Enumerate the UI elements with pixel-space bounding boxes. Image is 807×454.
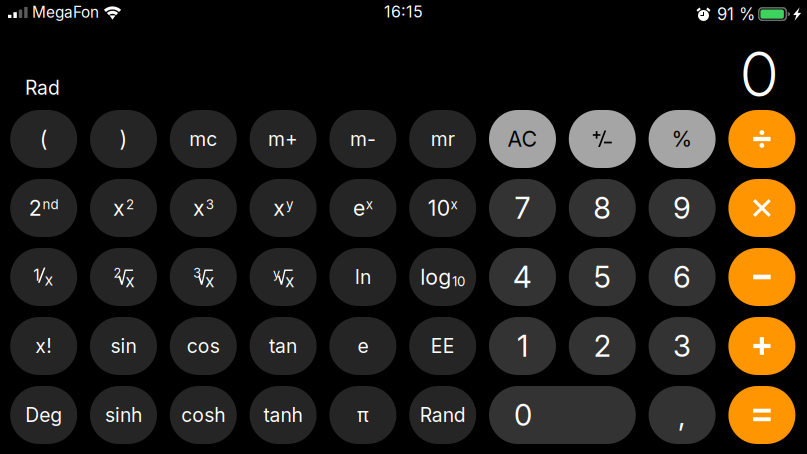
button[interactable]: x: [170, 179, 237, 237]
staticText: Rad: [25, 76, 60, 99]
staticText: ln: [355, 265, 371, 289]
staticText: mr: [431, 127, 455, 151]
staticText: x: [451, 196, 458, 212]
button[interactable]: x: [90, 179, 157, 237]
button[interactable]: cos: [170, 317, 237, 375]
staticText: x: [193, 195, 205, 221]
staticText: ,: [678, 397, 686, 433]
staticText: 91 %: [717, 4, 755, 24]
button[interactable]: 10: [409, 179, 476, 237]
button[interactable]: x!: [10, 317, 77, 375]
staticText: 2: [29, 195, 42, 221]
staticText: sin: [110, 334, 136, 358]
button[interactable]: m+: [250, 110, 317, 168]
button[interactable]: Deg: [10, 386, 77, 444]
staticText: tanh: [264, 403, 303, 427]
button[interactable]: e: [329, 317, 396, 375]
staticText: Rand: [420, 403, 466, 427]
staticText: MegaFon: [32, 3, 99, 22]
staticText: log: [420, 264, 451, 290]
staticText: π: [357, 403, 369, 427]
button[interactable]: ln: [329, 248, 396, 306]
button[interactable]: 5: [569, 248, 636, 306]
button[interactable]: [728, 248, 795, 306]
staticText: y: [273, 265, 280, 281]
staticText: 4: [513, 259, 532, 295]
button[interactable]: 1: [10, 248, 77, 306]
staticText: %: [672, 126, 693, 152]
staticText: tan: [269, 334, 297, 358]
staticText: sinh: [105, 403, 142, 427]
button[interactable]: log: [409, 248, 476, 306]
button[interactable]: [728, 110, 795, 168]
button[interactable]: 2: [90, 248, 157, 306]
button[interactable]: 1: [489, 317, 556, 375]
staticText: 3: [193, 265, 201, 281]
staticText: m+: [268, 127, 298, 151]
staticText: 3: [206, 196, 214, 212]
button[interactable]: 9: [649, 179, 716, 237]
button[interactable]: [569, 110, 636, 168]
staticText: 0: [741, 37, 777, 111]
button[interactable]: e: [329, 179, 396, 237]
button[interactable]: tan: [250, 317, 317, 375]
button[interactable]: 3: [649, 317, 716, 375]
staticText: x: [366, 196, 373, 212]
button[interactable]: 2: [569, 317, 636, 375]
staticText: 7: [514, 190, 530, 226]
button[interactable]: mc: [170, 110, 237, 168]
staticText: 1: [33, 265, 40, 285]
staticText: 3: [673, 328, 691, 364]
button[interactable]: sin: [90, 317, 157, 375]
staticText: 8: [593, 190, 611, 226]
staticText: cos: [187, 334, 220, 358]
button[interactable]: π: [329, 386, 396, 444]
staticText: ): [119, 126, 127, 152]
staticText: 0: [514, 397, 532, 433]
staticText: 2: [126, 196, 134, 212]
staticText: x: [125, 270, 134, 291]
button[interactable]: [728, 317, 795, 375]
button[interactable]: (: [10, 110, 77, 168]
staticText: 5: [594, 259, 611, 295]
staticText: cosh: [181, 403, 225, 427]
button[interactable]: [728, 386, 795, 444]
button[interactable]: cosh: [170, 386, 237, 444]
button[interactable]: m-: [329, 110, 396, 168]
staticText: m-: [350, 127, 376, 151]
button[interactable]: %: [649, 110, 716, 168]
staticText: x!: [35, 334, 52, 358]
button[interactable]: tanh: [250, 386, 317, 444]
button[interactable]: 4: [489, 248, 556, 306]
staticText: x: [273, 195, 285, 221]
button[interactable]: [728, 179, 795, 237]
staticText: 10: [452, 273, 465, 289]
button[interactable]: ): [90, 110, 157, 168]
button[interactable]: 6: [649, 248, 716, 306]
staticText: AC: [507, 126, 537, 152]
button[interactable]: sinh: [90, 386, 157, 444]
button[interactable]: 3: [170, 248, 237, 306]
staticText: x: [285, 270, 294, 291]
button[interactable]: Rand: [409, 386, 476, 444]
button[interactable]: x: [250, 179, 317, 237]
staticText: EE: [431, 334, 455, 358]
button[interactable]: mr: [409, 110, 476, 168]
button[interactable]: ,: [649, 386, 716, 444]
button[interactable]: y: [250, 248, 317, 306]
button[interactable]: 2: [10, 179, 77, 237]
staticText: x: [45, 270, 54, 289]
button[interactable]: 0: [489, 386, 636, 444]
staticText: 9: [673, 190, 691, 226]
button[interactable]: AC: [489, 110, 556, 168]
staticText: 1: [517, 328, 528, 364]
button[interactable]: EE: [409, 317, 476, 375]
staticText: y: [286, 196, 293, 212]
button[interactable]: 8: [569, 179, 636, 237]
button[interactable]: 7: [489, 179, 556, 237]
staticText: x: [205, 270, 214, 291]
staticText: 2: [113, 265, 121, 281]
staticText: 6: [673, 259, 691, 295]
staticText: 16:15: [384, 2, 423, 21]
staticText: (: [40, 126, 48, 152]
